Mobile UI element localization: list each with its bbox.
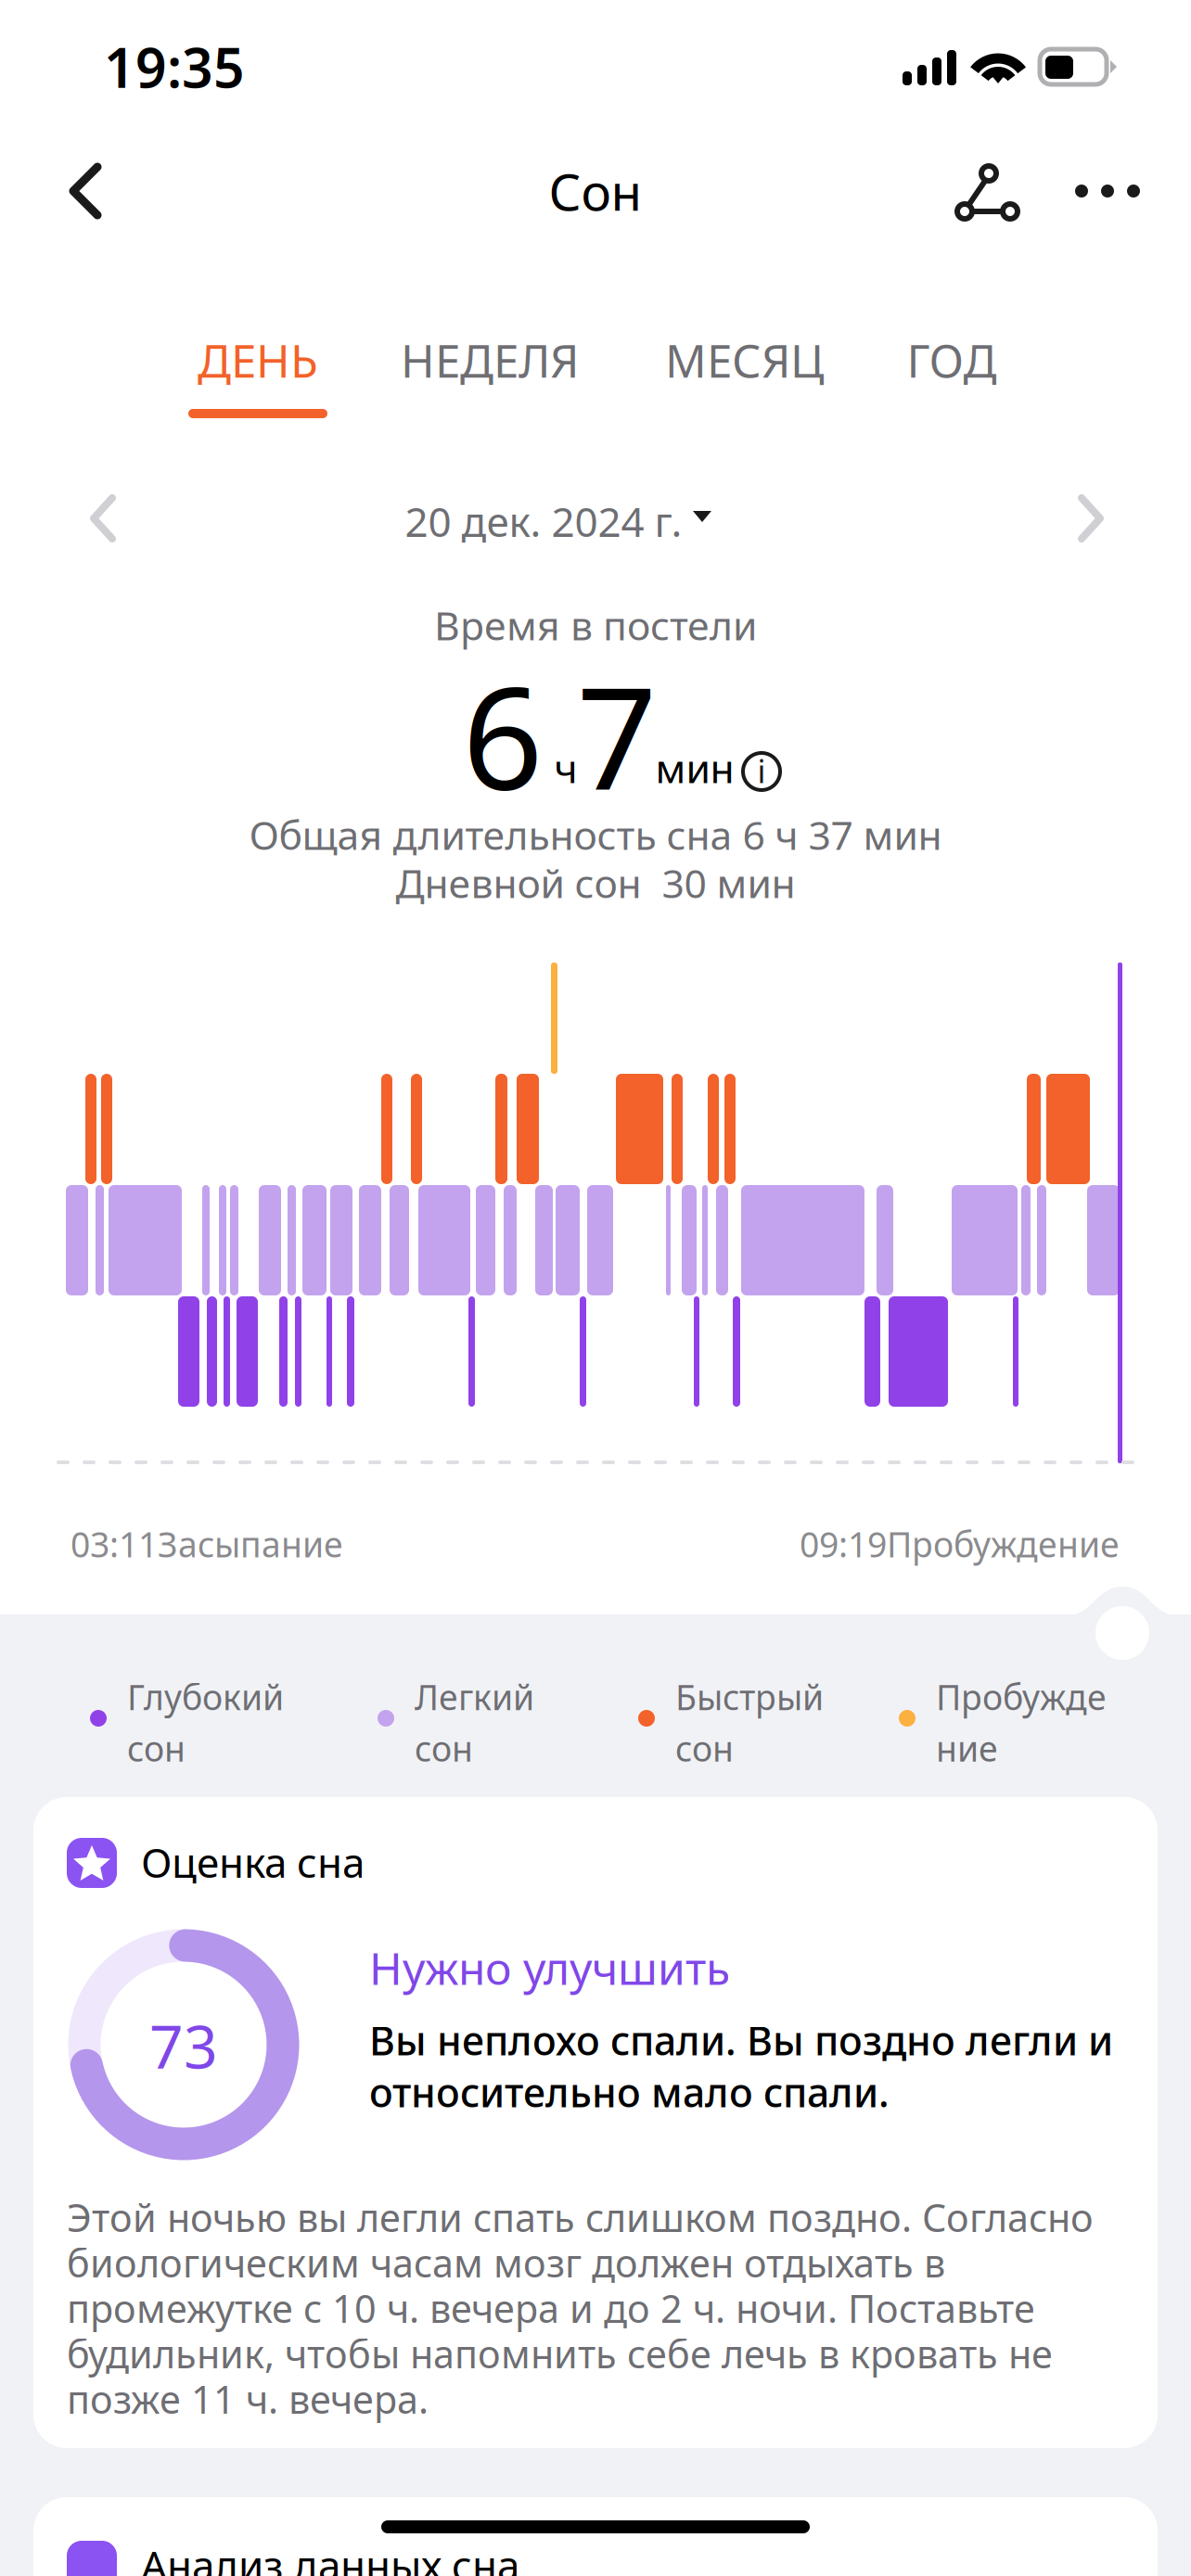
button[interactable]: МЕСЯЦ — [638, 313, 852, 406]
staticText: сон — [675, 1725, 734, 1771]
staticText: Вы неплохо спали. Вы поздно легли и — [369, 2014, 1113, 2066]
staticText: Сон — [549, 157, 642, 225]
staticText: ч — [554, 742, 577, 794]
staticText: 7 — [576, 641, 657, 828]
staticText: ДЕНЬ — [198, 329, 318, 390]
staticText: ГОД — [907, 329, 997, 390]
staticText: Нужно улучшить — [369, 1938, 730, 1997]
staticText: Глубокий — [127, 1674, 284, 1720]
button[interactable]: ГОД — [868, 313, 1035, 406]
button[interactable]: ДЕНЬ — [156, 313, 360, 406]
staticText: 03:11Засыпание — [70, 1521, 343, 1567]
staticText: относительно мало спали. — [369, 2066, 890, 2118]
staticText: Легкий — [415, 1674, 534, 1720]
staticText: Дневной сон 30 мин — [396, 857, 795, 909]
button[interactable]: Ещё — [1052, 145, 1163, 237]
staticText: Анализ данных сна — [141, 2538, 519, 2576]
staticText: сон — [127, 1725, 186, 1771]
staticText: промежутке с 10 ч. вечера и до 2 ч. ночи… — [67, 2283, 1035, 2334]
staticText: 73 — [149, 2006, 218, 2085]
button[interactable]: Поделиться — [939, 140, 1041, 242]
staticText: Общая длительность сна 6 ч 37 мин — [249, 808, 942, 861]
staticText: МЕСЯЦ — [665, 329, 825, 390]
button[interactable]: Назад — [34, 140, 136, 242]
staticText: будильник, чтобы напомнить себе лечь в к… — [67, 2328, 1053, 2379]
staticText: позже 11 ч. вечера. — [67, 2373, 429, 2424]
button[interactable]: НЕДЕЛЯ — [378, 313, 601, 406]
staticText: i — [757, 749, 766, 792]
staticText: Оценка сна — [141, 1835, 365, 1889]
staticText: ние — [936, 1725, 998, 1771]
button[interactable]: 20 дек. 2024 г. — [410, 479, 781, 563]
staticText: биологическим часам мозг должен отдыхать… — [67, 2237, 945, 2288]
staticText: Быстрый — [675, 1674, 824, 1720]
staticText: 20 дек. 2024 г. — [405, 494, 682, 548]
staticText: сон — [415, 1725, 473, 1771]
staticText: 19:35 — [104, 31, 245, 103]
staticText: НЕДЕЛЯ — [401, 329, 579, 390]
staticText: 09:19Пробуждение — [800, 1521, 1120, 1567]
button[interactable]: Предыдущий день — [55, 472, 147, 565]
staticText: Этой ночью вы легли спать слишком поздно… — [67, 2192, 1094, 2243]
staticText: Время в постели — [434, 599, 757, 651]
staticText: Пробужде — [936, 1674, 1107, 1720]
staticText: 6 — [462, 641, 543, 828]
staticText: мин — [655, 742, 734, 794]
button[interactable]: Следующий день — [1046, 472, 1139, 565]
